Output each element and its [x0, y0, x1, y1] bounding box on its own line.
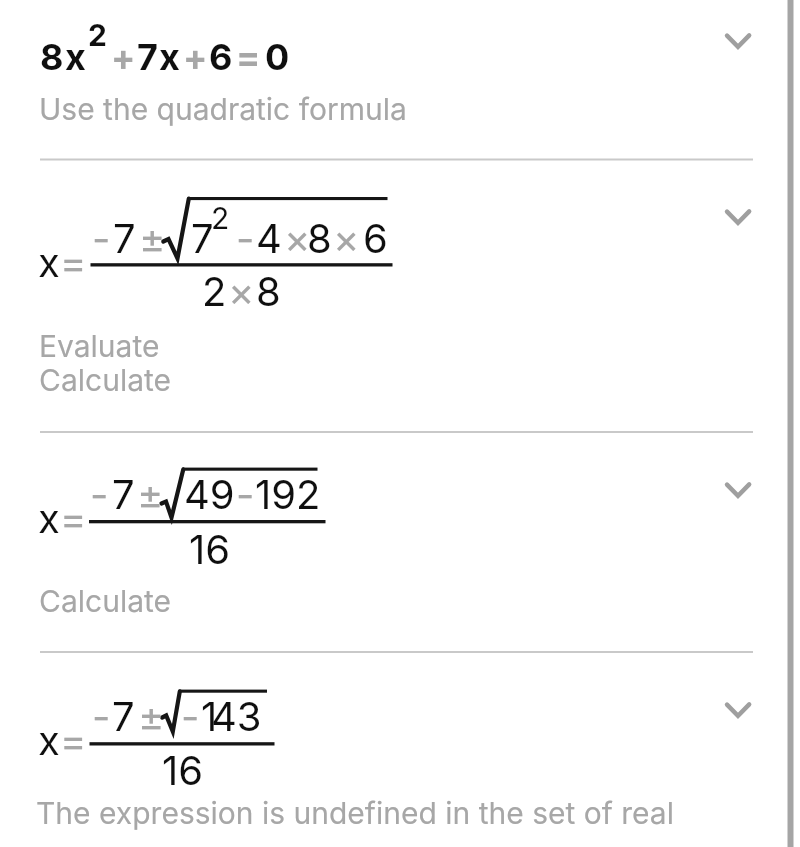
staticText: 7 [137, 35, 158, 79]
staticText: 16 [189, 525, 231, 573]
staticText: 7 [112, 470, 135, 518]
staticText: + [183, 35, 208, 79]
staticText: 2 [88, 17, 107, 53]
button[interactable] [0, 160, 800, 432]
staticText: x [38, 494, 60, 542]
staticText: ± [137, 470, 164, 518]
staticText: x [159, 35, 180, 79]
button[interactable] [0, 652, 800, 847]
staticText: - [90, 470, 109, 518]
staticText: 7 [112, 692, 135, 740]
staticText: 7 [113, 214, 136, 262]
staticText: 8 [256, 267, 281, 315]
button[interactable] [0, 0, 800, 160]
staticText: - [181, 692, 200, 740]
staticText: x [38, 238, 60, 286]
staticText: - [92, 692, 111, 740]
staticText: Use the quadratic formula [39, 91, 407, 127]
staticText: × [333, 214, 360, 262]
staticText: - [236, 470, 255, 518]
staticText: 0 [265, 35, 290, 79]
staticText: + [111, 35, 136, 79]
staticText: x [65, 35, 86, 79]
staticText: = [60, 494, 87, 542]
staticText: 8 [40, 35, 64, 79]
staticText: Evaluate [39, 328, 160, 364]
staticText: 6 [363, 214, 388, 262]
staticText: 8 [307, 214, 332, 262]
staticText: × [284, 214, 311, 262]
staticText: = [60, 716, 87, 764]
staticText: Calculate [39, 362, 172, 398]
staticText: ± [138, 692, 165, 740]
staticText: - [92, 214, 111, 262]
staticText: The expression is undefined in the set o… [36, 795, 674, 831]
staticText: 43 [211, 692, 262, 740]
staticText: Calculate [39, 583, 172, 619]
staticText: 192 [255, 470, 321, 518]
staticText: 16 [162, 746, 204, 794]
staticText: x [38, 716, 60, 764]
button[interactable] [0, 432, 800, 652]
staticText: 1 [201, 692, 218, 740]
staticText: = [236, 35, 261, 79]
staticText: 4 [256, 214, 282, 262]
staticText: ± [139, 214, 166, 262]
staticText: - [236, 214, 255, 262]
staticText: 7 [191, 214, 214, 262]
staticText: 2 [202, 267, 227, 315]
staticText: = [60, 238, 87, 286]
staticText: 2 [211, 200, 230, 236]
staticText: × [228, 267, 255, 315]
staticText: 6 [209, 35, 233, 79]
staticText: 49 [184, 470, 235, 518]
